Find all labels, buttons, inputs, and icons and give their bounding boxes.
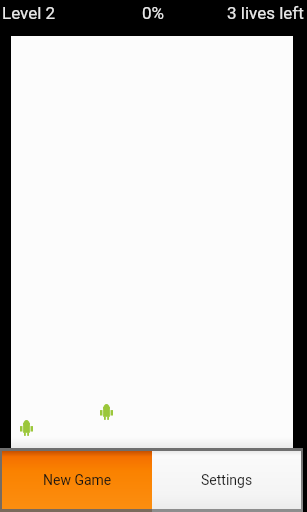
staticText: Level 2 bbox=[2, 3, 56, 23]
staticText: New Game bbox=[43, 472, 112, 488]
staticText: 3 lives left bbox=[227, 3, 304, 23]
staticText: Settings bbox=[201, 472, 253, 488]
button[interactable]: New Game bbox=[2, 451, 152, 509]
staticText: 0% bbox=[142, 3, 165, 23]
button[interactable]: Settings bbox=[152, 451, 301, 509]
